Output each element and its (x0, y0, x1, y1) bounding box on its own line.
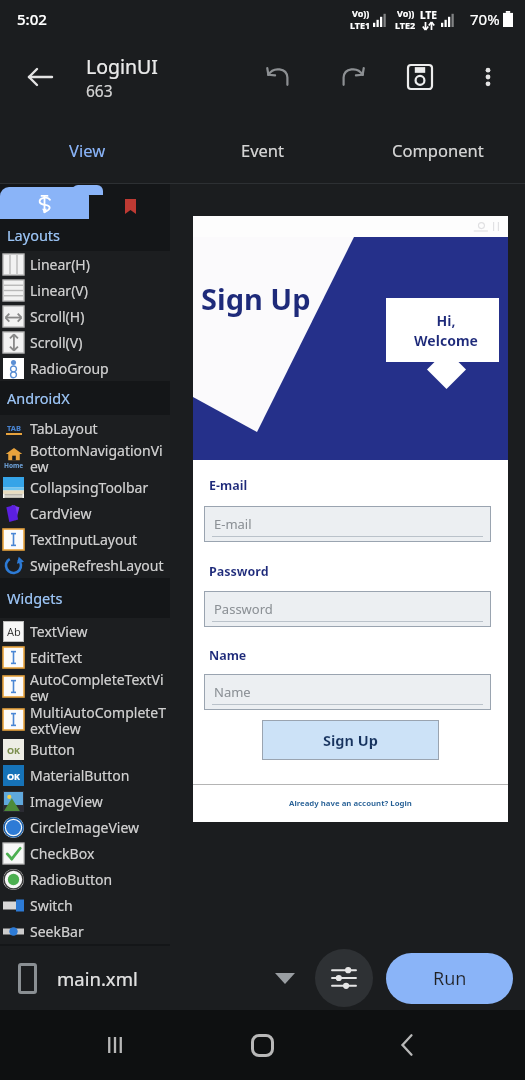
staticText: Name (214, 683, 251, 701)
staticText: Sign Up (201, 279, 311, 318)
button[interactable]: MultiAutoCompleteTextView (0, 703, 170, 736)
staticText: TextInputLayout (30, 530, 169, 549)
staticText: Vo)) (352, 7, 370, 19)
staticText: Linear(V) (30, 281, 169, 300)
staticText: Hi, Welcome (414, 311, 478, 350)
staticText: RadioGroup (30, 359, 169, 378)
button[interactable]: Settings (315, 949, 373, 1007)
staticText: 5:02 (17, 9, 47, 29)
staticText: Component (392, 139, 484, 161)
button[interactable]: OK (0, 736, 170, 762)
staticText: SwipeRefreshLayout (30, 556, 169, 575)
button[interactable]: SwipeRefreshLayout (0, 552, 170, 578)
staticText: 663 (86, 80, 113, 101)
button[interactable]: ImageView (0, 788, 170, 814)
button[interactable]: Recent apps (91, 1021, 139, 1069)
button[interactable]: Palette (0, 187, 89, 219)
staticText: View (69, 139, 106, 161)
button[interactable]: RadioButton (0, 866, 170, 892)
staticText: AutoCompleteTextView (30, 670, 169, 703)
staticText: CollapsingToolbar (30, 478, 169, 497)
staticText: Layouts (7, 225, 61, 245)
button[interactable]: EditText (0, 644, 170, 670)
staticText: E-mail (209, 477, 248, 494)
staticText: OK (7, 744, 21, 756)
button[interactable]: Back (16, 53, 64, 101)
button[interactable]: Favorites (119, 195, 141, 217)
staticText: Scroll(V) (30, 333, 169, 352)
button[interactable]: CircleImageView (0, 814, 170, 840)
staticText: Sign Up (323, 730, 378, 750)
button[interactable]: Home (238, 1021, 286, 1069)
staticText: E-mail (214, 515, 252, 533)
staticText: Event (241, 139, 285, 161)
staticText: Vo)) (397, 7, 415, 19)
button[interactable]: Ab (0, 618, 170, 644)
staticText: LTE (420, 8, 437, 22)
button[interactable]: Already have an account? Login (193, 785, 508, 822)
button[interactable]: Scroll(V) (0, 329, 170, 355)
staticText: AndroidX (7, 388, 70, 408)
button[interactable]: Run (386, 953, 513, 1004)
button[interactable]: RadioGroup (0, 355, 170, 381)
staticText: Password (214, 600, 273, 618)
staticText: Switch (30, 896, 169, 915)
staticText: Button (30, 740, 169, 759)
button[interactable]: Component (350, 116, 525, 184)
staticText: LTE1 (350, 19, 371, 31)
staticText: Linear(H) (30, 255, 169, 274)
staticText: CircleImageView (30, 818, 169, 837)
button[interactable]: TextInputLayout (0, 526, 170, 552)
button[interactable]: Redo (328, 53, 376, 101)
staticText: MaterialButton (30, 766, 169, 785)
staticText: ImageView (30, 792, 169, 811)
button[interactable]: SeekBar (0, 918, 170, 944)
button[interactable]: OK (0, 762, 170, 788)
button[interactable]: Sign Up (262, 720, 439, 760)
staticText: MultiAutoCompleteTextView (30, 703, 169, 736)
button[interactable]: Scroll(H) (0, 303, 170, 329)
staticText: CheckBox (30, 844, 169, 863)
staticText: Password (209, 563, 269, 580)
button[interactable]: Home (0, 441, 170, 474)
staticText: TabLayout (30, 419, 169, 438)
button[interactable]: TAB (0, 415, 170, 441)
staticText: Name (209, 647, 247, 664)
button[interactable]: CheckBox (0, 840, 170, 866)
staticText: RadioButton (30, 870, 169, 889)
button[interactable]: More options (466, 55, 510, 99)
staticText: main.xml (57, 966, 138, 991)
staticText: Widgets (7, 588, 63, 608)
staticText: Scroll(H) (30, 307, 169, 326)
button[interactable]: CollapsingToolbar (0, 474, 170, 500)
staticText: LoginUI (86, 53, 158, 80)
button[interactable]: Linear(H) (0, 251, 170, 277)
button[interactable]: Undo (255, 53, 303, 101)
staticText: BottomNavigationView (30, 441, 169, 474)
staticText: Already have an account? Login (289, 798, 412, 809)
button[interactable]: CardView (0, 500, 170, 526)
staticText: TextView (30, 622, 169, 641)
button[interactable]: Back (383, 1021, 431, 1069)
button[interactable]: View (0, 116, 175, 184)
staticText: CardView (30, 504, 169, 523)
staticText: EditText (30, 648, 169, 667)
staticText: SeekBar (30, 922, 169, 941)
staticText: Ab (7, 624, 21, 639)
button[interactable]: Select file (270, 963, 300, 993)
staticText: OK (7, 770, 21, 782)
button[interactable]: Switch (0, 892, 170, 918)
staticText: Run (433, 966, 467, 991)
staticText: LTE2 (395, 19, 416, 31)
staticText: 70% (470, 9, 500, 29)
button[interactable]: Save (396, 53, 444, 101)
staticText: Home (4, 461, 24, 468)
button[interactable]: Linear(V) (0, 277, 170, 303)
staticText: TAB (7, 423, 21, 433)
button[interactable]: Event (175, 116, 350, 184)
button[interactable]: AutoCompleteTextView (0, 670, 170, 703)
